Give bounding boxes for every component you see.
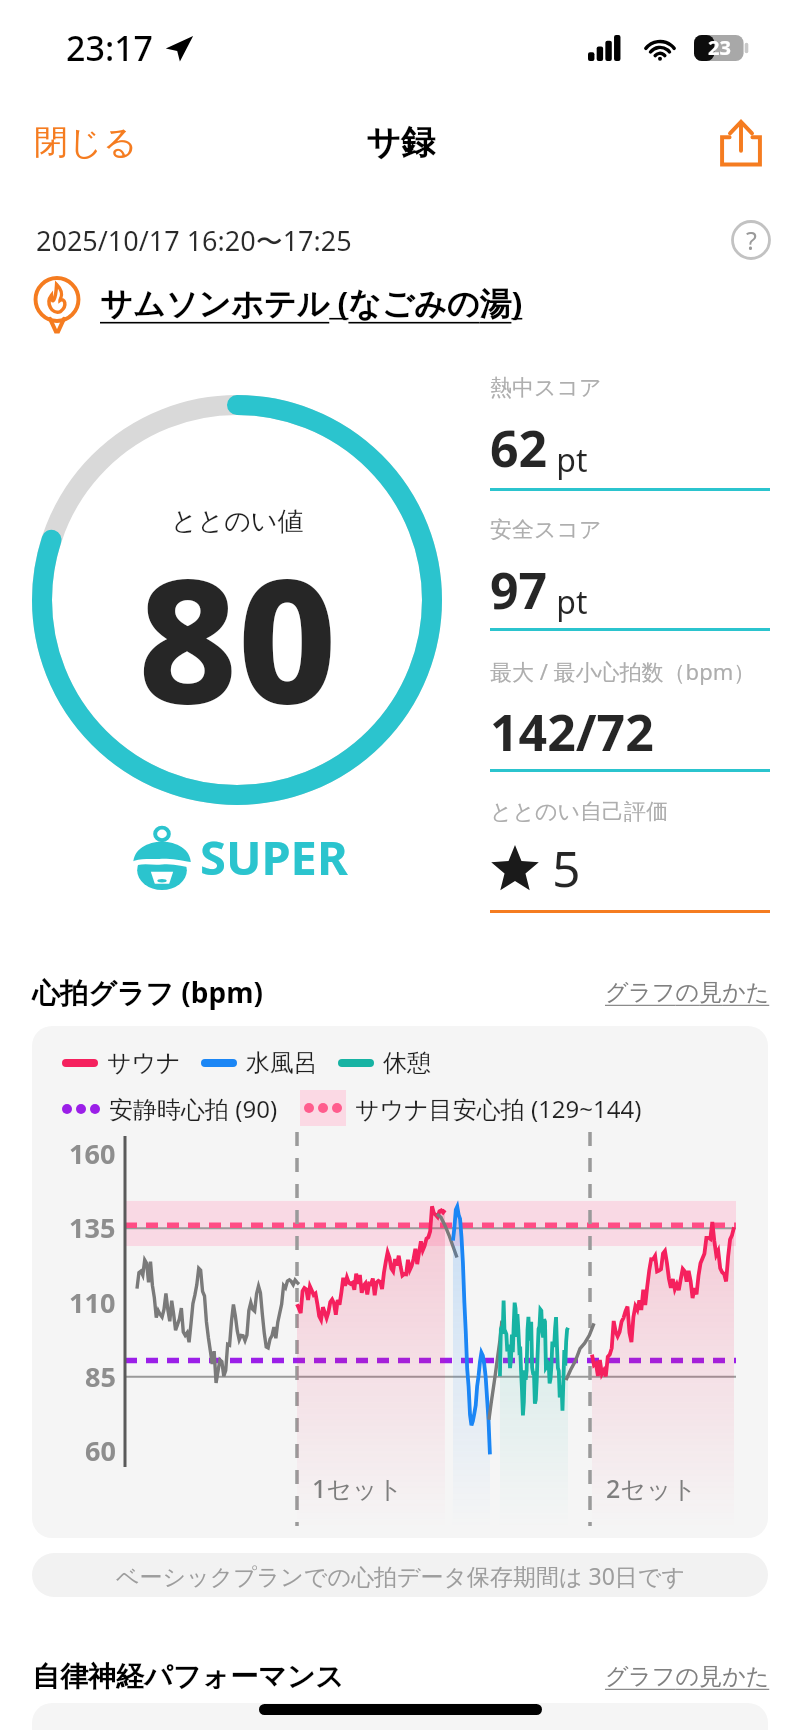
staticText: SUPER: [200, 825, 348, 889]
staticText: ベーシックプランでの心拍データ保存期間は 30日です: [116, 1560, 685, 1591]
staticText: 閉じる: [34, 121, 138, 164]
staticText: 135: [69, 1209, 116, 1246]
staticText: 休憩: [383, 1048, 431, 1078]
button[interactable]: Help: [728, 217, 774, 263]
staticText: 水風呂: [246, 1048, 318, 1078]
staticText: 自律神経パフォーマンス: [32, 1659, 344, 1694]
staticText: 安静時心拍 (90): [109, 1092, 278, 1125]
staticText: 97: [490, 556, 548, 624]
staticText: 5: [552, 834, 581, 902]
staticText: サ録: [366, 121, 435, 164]
staticText: pt: [548, 438, 588, 482]
staticText: 62: [490, 414, 548, 482]
staticText: ととのい値: [171, 505, 304, 538]
button[interactable]: 閉じる: [0, 107, 172, 178]
staticText: サウナ: [107, 1048, 181, 1078]
staticText: 23: [708, 34, 731, 61]
staticText: 110: [69, 1284, 116, 1321]
staticText: 142/72: [490, 698, 654, 766]
staticText: ととのい自己評価: [490, 798, 669, 826]
staticText: 23:17: [66, 25, 154, 71]
staticText: サウナ目安心拍 (129~144): [355, 1092, 642, 1125]
button[interactable]: グラフの見かた: [605, 972, 770, 1013]
staticText: 160: [69, 1135, 116, 1172]
staticText: 60: [85, 1432, 116, 1469]
staticText: 熱中スコア: [490, 374, 602, 402]
staticText: ?: [746, 223, 757, 257]
staticText: サムソンホテル (なごみの湯): [100, 281, 523, 325]
staticText: 1セット: [312, 1471, 404, 1505]
button[interactable]: グラフの見かた: [605, 1656, 770, 1697]
staticText: pt: [548, 580, 588, 624]
staticText: 最大 / 最小心拍数（bpm）: [490, 656, 756, 686]
staticText: グラフの見かた: [605, 1662, 770, 1691]
staticText: 85: [85, 1358, 116, 1395]
staticText: 2セット: [606, 1471, 698, 1505]
button[interactable]: サムソンホテル (なごみの湯): [28, 272, 772, 334]
staticText: 2025/10/17 16:20〜17:25: [36, 222, 352, 259]
button[interactable]: Share: [710, 112, 772, 174]
staticText: 安全スコア: [490, 516, 602, 544]
staticText: 80: [138, 519, 337, 753]
staticText: 心拍グラフ (bpm): [32, 973, 263, 1011]
button[interactable]: ととのい自己評価: [490, 798, 770, 902]
staticText: グラフの見かた: [605, 978, 770, 1007]
